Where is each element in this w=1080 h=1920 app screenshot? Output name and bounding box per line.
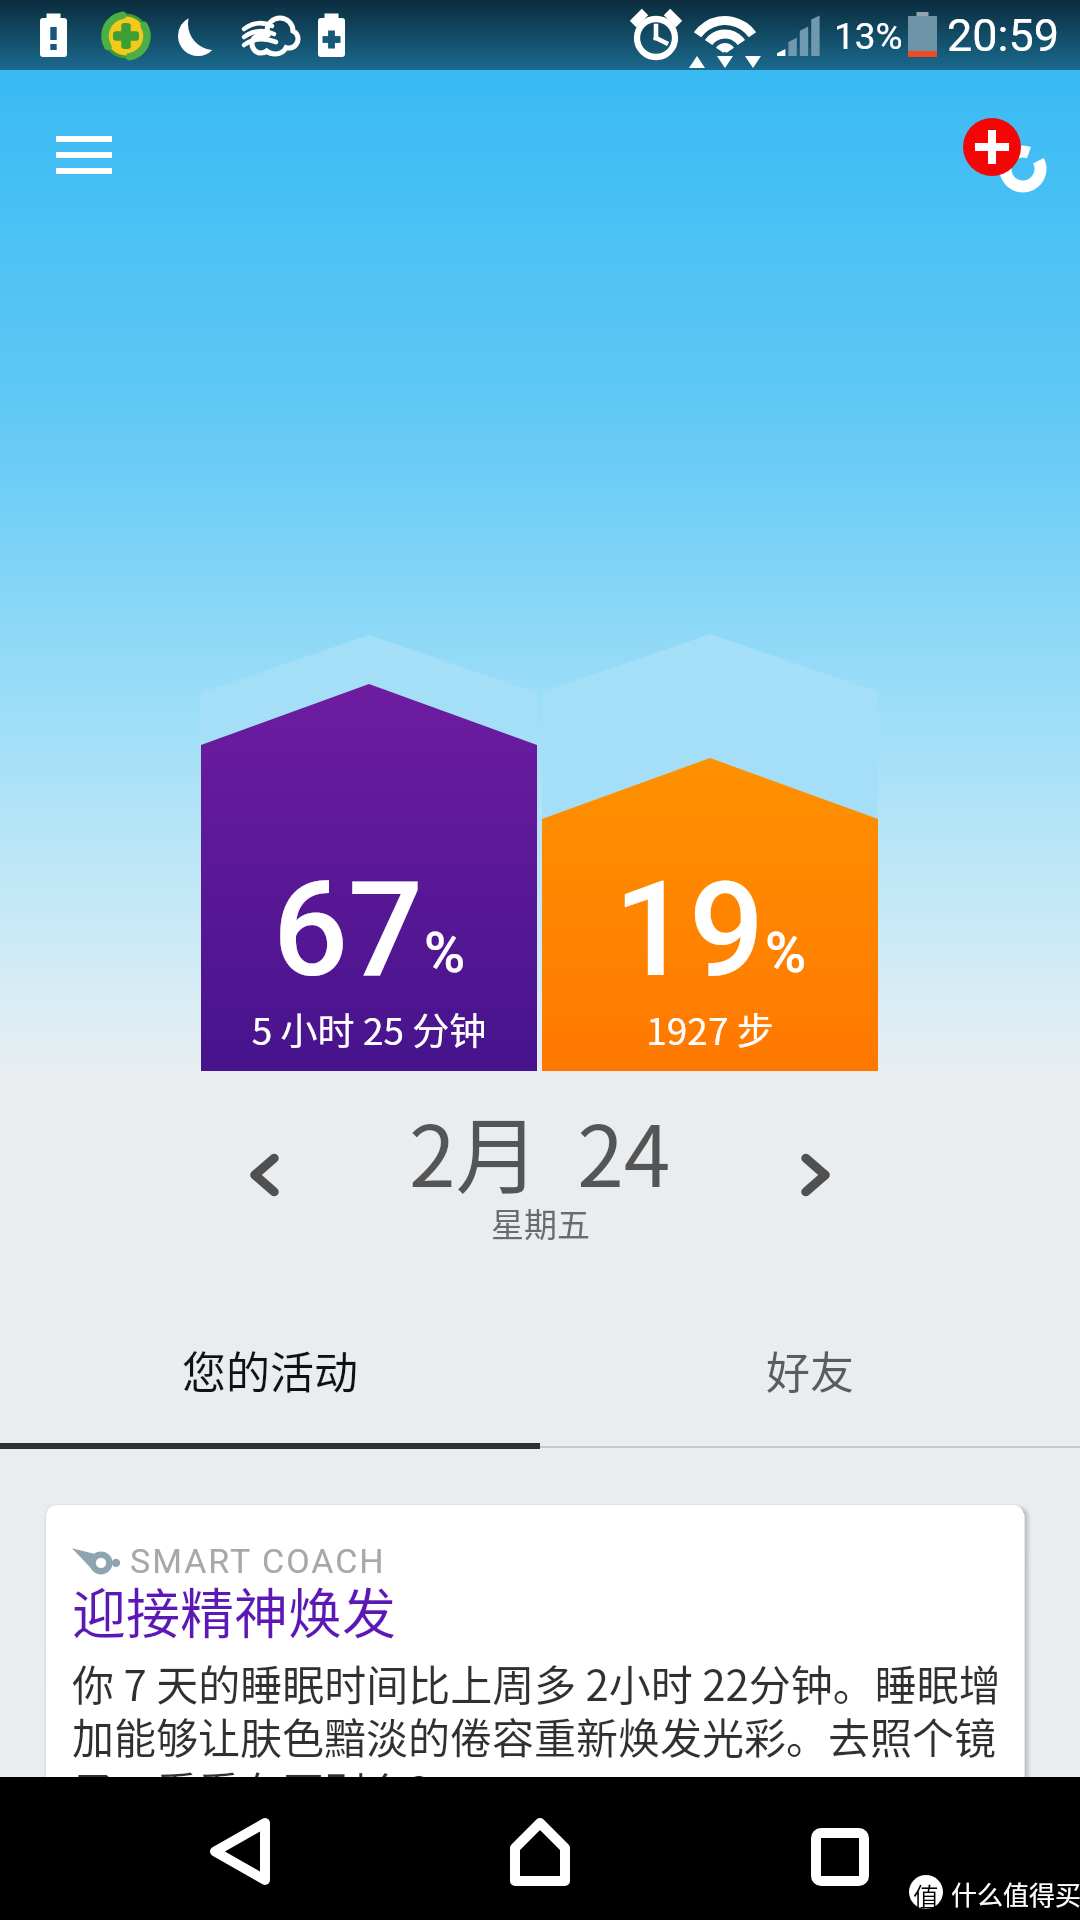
staticText: 19 <box>614 853 765 1008</box>
button[interactable]: Add activity <box>938 90 1068 220</box>
staticText: 您的活动 <box>182 1338 358 1402</box>
staticText: SMART COACH <box>130 1541 386 1581</box>
button[interactable]: Menu <box>36 116 132 194</box>
button[interactable]: SMART COACH <box>46 1505 1024 1795</box>
staticText: 你 7 天的睡眠时间比上周多 2小时 22分钟。睡眠增加能够让肤色黯淡的倦容重新… <box>72 1652 1024 1795</box>
staticText: 迎接精神焕发 <box>72 1571 396 1649</box>
staticText: % <box>765 920 807 986</box>
staticText: 13% <box>834 15 903 58</box>
button[interactable]: Home <box>480 1804 600 1894</box>
button[interactable]: 您的活动 <box>0 1295 540 1445</box>
staticText: 星期五 <box>491 1199 590 1247</box>
staticText: 什么值得买 <box>951 1875 1080 1913</box>
staticText: 67 <box>273 853 424 1008</box>
staticText: 值 <box>913 1877 940 1911</box>
staticText: % <box>424 920 466 986</box>
staticText: 好友 <box>766 1338 854 1402</box>
button[interactable]: Previous day <box>210 1120 320 1230</box>
button[interactable]: Next day <box>760 1120 870 1230</box>
button[interactable]: 好友 <box>540 1295 1080 1445</box>
staticText: 20:59 <box>947 9 1060 62</box>
button[interactable]: Back <box>180 1804 300 1894</box>
staticText: 1927 步 <box>542 1002 878 1056</box>
staticText: 2月 24 <box>409 1090 671 1212</box>
staticText: 5 小时 25 分钟 <box>201 1002 537 1056</box>
button[interactable]: Recents <box>780 1804 900 1894</box>
